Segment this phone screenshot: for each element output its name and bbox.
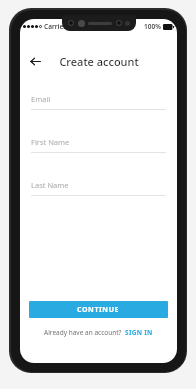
staticText: First Name — [31, 137, 70, 147]
staticText: Already have an account? — [44, 328, 122, 337]
staticText: Create account — [59, 54, 139, 69]
button[interactable]: Back — [25, 51, 45, 71]
staticText: SIGN IN — [125, 328, 153, 337]
button[interactable]: SIGN IN — [125, 328, 153, 337]
staticText: CONTINUE — [77, 305, 120, 315]
staticText: 100% — [144, 22, 161, 31]
staticText: Carrier — [44, 22, 67, 31]
button[interactable]: First Name — [31, 137, 166, 153]
button[interactable]: Email — [31, 94, 166, 110]
button[interactable]: CONTINUE — [29, 301, 168, 318]
staticText: Email — [31, 94, 51, 104]
button[interactable]: Last Name — [31, 180, 166, 196]
staticText: Last Name — [31, 180, 69, 190]
